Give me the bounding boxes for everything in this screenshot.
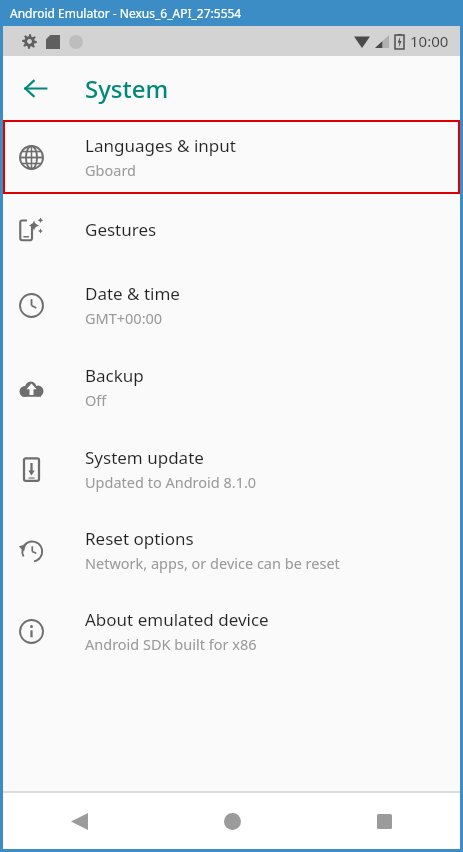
button[interactable]: Recent apps [308, 793, 460, 849]
staticText: System update [85, 446, 204, 469]
button[interactable]: Back [13, 66, 57, 110]
staticText: Network, apps, or device can be reset [85, 553, 340, 573]
staticText: Gestures [85, 218, 157, 241]
staticText: System [85, 72, 169, 105]
staticText: Android Emulator - Nexus_6_API_27:5554 [10, 5, 242, 21]
button[interactable]: Reset options [3, 510, 460, 590]
button[interactable]: Gestures [3, 194, 460, 264]
button[interactable]: System update [3, 428, 460, 510]
staticText: About emulated device [85, 608, 269, 631]
button[interactable]: Languages & input [3, 120, 460, 194]
button[interactable]: Home [156, 793, 308, 849]
staticText: Off [85, 390, 107, 410]
staticText: Date & time [85, 282, 180, 305]
button[interactable]: About emulated device [3, 590, 460, 672]
button[interactable]: Back [3, 793, 156, 849]
staticText: Reset options [85, 527, 194, 550]
staticText: GMT+00:00 [85, 308, 163, 328]
staticText: Gboard [85, 160, 136, 180]
staticText: 10:00 [410, 31, 449, 51]
button[interactable]: Backup [3, 346, 460, 428]
staticText: Backup [85, 364, 144, 387]
staticText: Languages & input [85, 134, 236, 157]
button[interactable]: Date & time [3, 264, 460, 346]
staticText: Updated to Android 8.1.0 [85, 472, 257, 492]
staticText: Android SDK built for x86 [85, 634, 257, 654]
